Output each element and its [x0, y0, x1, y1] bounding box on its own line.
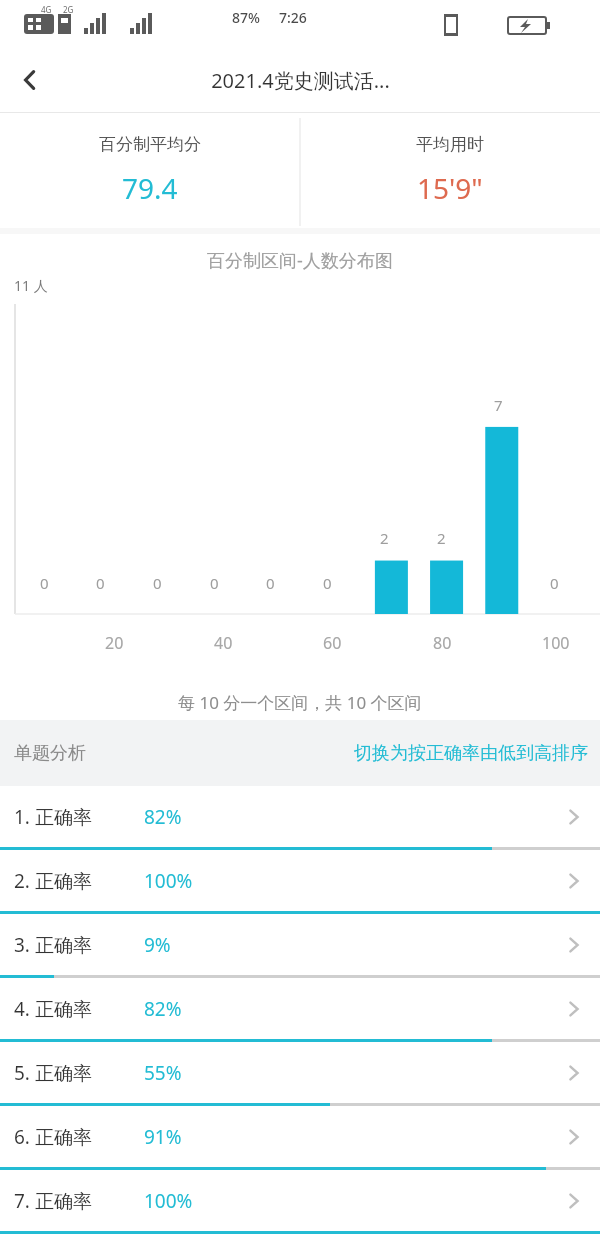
staticText: 5. 正确率	[14, 1060, 92, 1086]
staticText: 2	[437, 528, 446, 548]
staticText: 55%	[144, 1060, 182, 1086]
button[interactable]: 平均用时	[300, 112, 600, 228]
staticText: 80	[433, 632, 452, 654]
button[interactable]: 1. 正确率	[0, 786, 600, 850]
button[interactable]: 7. 正确率	[0, 1170, 600, 1234]
staticText: 7	[494, 395, 503, 415]
staticText: 4. 正确率	[14, 996, 92, 1022]
staticText: 0	[153, 573, 162, 593]
button[interactable]: 6. 正确率	[0, 1106, 600, 1170]
button[interactable]: Back	[4, 54, 56, 106]
button[interactable]: 切换为按正确率由低到高排序	[348, 736, 594, 771]
staticText: 0	[40, 573, 49, 593]
staticText: 82%	[144, 996, 182, 1022]
staticText: 0	[550, 573, 559, 593]
staticText: 2G	[63, 4, 74, 15]
staticText: 6. 正确率	[14, 1124, 92, 1150]
staticText: 20	[105, 632, 124, 654]
staticText: 3. 正确率	[14, 932, 92, 958]
staticText: 100%	[144, 1188, 193, 1214]
staticText: 切换为按正确率由低到高排序	[354, 742, 588, 765]
staticText: 79.4	[122, 169, 178, 207]
staticText: 100%	[144, 868, 193, 894]
staticText: 11 人	[14, 276, 48, 295]
staticText: 0	[323, 573, 332, 593]
staticText: 7. 正确率	[14, 1188, 92, 1214]
staticText: 4G	[41, 4, 52, 15]
staticText: 100	[542, 632, 570, 654]
staticText: 百分制平均分	[99, 134, 201, 155]
staticText: 0	[210, 573, 219, 593]
button[interactable]: 2. 正确率	[0, 850, 600, 914]
staticText: 15'9"	[417, 169, 483, 207]
button[interactable]: 5. 正确率	[0, 1042, 600, 1106]
staticText: 9%	[144, 932, 171, 958]
staticText: 2	[380, 528, 389, 548]
staticText: 2021.4党史测试活...	[211, 67, 390, 94]
staticText: 2. 正确率	[14, 868, 92, 894]
staticText: 平均用时	[416, 134, 484, 155]
button[interactable]: 百分制平均分	[0, 112, 300, 228]
staticText: 0	[96, 573, 105, 593]
staticText: 7:26	[279, 8, 307, 27]
button[interactable]: 3. 正确率	[0, 914, 600, 978]
button[interactable]: 4. 正确率	[0, 978, 600, 1042]
staticText: 82%	[144, 804, 182, 830]
staticText: 百分制区间-人数分布图	[207, 248, 393, 273]
staticText: 单题分析	[14, 742, 86, 765]
staticText: 0	[266, 573, 275, 593]
staticText: 1. 正确率	[14, 804, 92, 830]
staticText: 60	[323, 632, 342, 654]
staticText: 每 10 分一个区间，共 10 个区间	[178, 691, 422, 714]
staticText: 91%	[144, 1124, 182, 1150]
staticText: 40	[214, 632, 233, 654]
staticText: 87%	[232, 8, 260, 27]
